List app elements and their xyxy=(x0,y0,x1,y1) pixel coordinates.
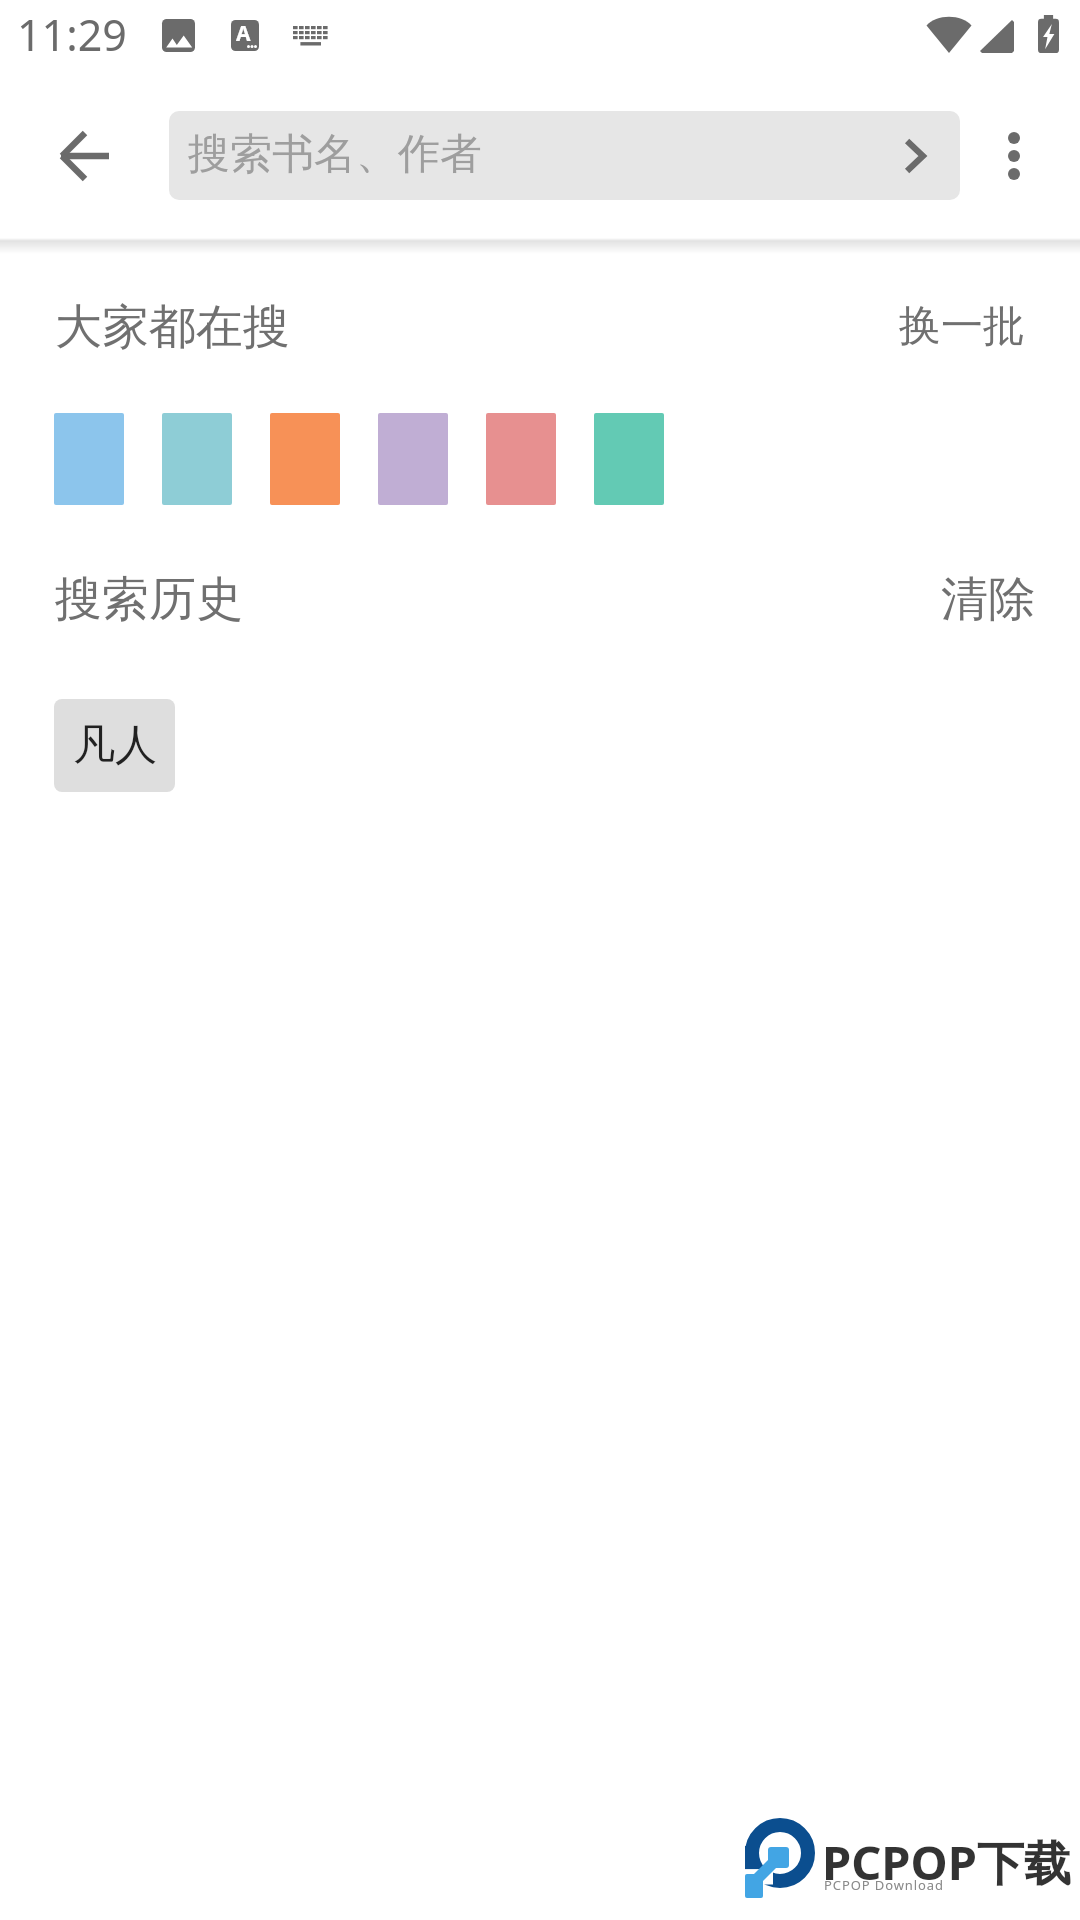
button[interactable]: More options xyxy=(968,110,1060,202)
staticText: 大家都在搜 xyxy=(55,298,290,354)
staticText: 搜索历史 xyxy=(55,570,243,626)
button[interactable]: 清除 xyxy=(911,558,1065,638)
staticText: 11:29 xyxy=(17,5,127,64)
button[interactable]: 大家都在搜 xyxy=(24,286,321,366)
button[interactable]: 搜索书名、作者 xyxy=(169,111,960,200)
staticText: 搜索书名、作者 xyxy=(188,128,482,181)
button[interactable]: 搜索历史 xyxy=(24,558,274,638)
staticText: 凡人 xyxy=(73,719,157,772)
staticText: 清除 xyxy=(941,570,1035,626)
staticText: 换一批 xyxy=(899,300,1025,353)
button[interactable]: 换一批 xyxy=(869,288,1055,365)
staticText: PCPOP Download xyxy=(824,1876,944,1894)
button[interactable]: 凡人 xyxy=(54,699,175,792)
button[interactable]: Back xyxy=(38,110,130,202)
staticText: PCPOP下载 xyxy=(822,1830,1071,1894)
staticText: A xyxy=(236,19,251,48)
